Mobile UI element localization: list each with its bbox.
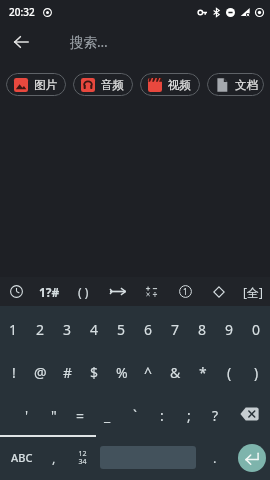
staticText: _ (104, 406, 111, 425)
button[interactable]: , (44, 435, 64, 480)
button[interactable]: 文档 (207, 73, 264, 96)
staticText: ^ (144, 363, 153, 382)
staticText: 1 (9, 320, 18, 339)
button[interactable]: ^ (135, 349, 162, 392)
button[interactable]: Numbers (168, 277, 202, 306)
staticText: ) (254, 363, 259, 382)
staticText: 图片 (34, 78, 57, 92)
staticText: ; (187, 406, 191, 425)
staticText: 0 (252, 320, 261, 339)
button[interactable]: % (108, 349, 135, 392)
button[interactable]: $ (81, 349, 108, 392)
staticText: 1?# (39, 284, 60, 300)
staticText: 5 (117, 320, 126, 339)
staticText: 7 (171, 320, 180, 339)
staticText: ABC (11, 450, 33, 465)
staticText: 视频 (168, 78, 191, 92)
staticText: 8 (198, 320, 207, 339)
button[interactable]: 音频 (73, 73, 133, 96)
button[interactable]: Recent (0, 277, 33, 306)
staticText: & (170, 363, 181, 382)
button[interactable]: Math (134, 277, 168, 306)
staticText: [全] (243, 284, 263, 300)
staticText: 6 (144, 320, 153, 339)
button[interactable]: 1 (0, 306, 27, 349)
button[interactable]: * (189, 349, 216, 392)
button[interactable]: ) (243, 349, 270, 392)
button[interactable]: 0 (243, 306, 270, 349)
button[interactable]: 3 (54, 306, 81, 349)
button[interactable]: 6 (135, 306, 162, 349)
staticText: ` (133, 406, 137, 425)
staticText: ' (25, 406, 29, 425)
button[interactable]: 2 (27, 306, 54, 349)
button[interactable]: @ (27, 349, 54, 392)
staticText: 12 34 (78, 449, 87, 466)
button[interactable]: ABC (0, 435, 44, 480)
button[interactable]: . (196, 435, 234, 480)
staticText: 9 (225, 320, 234, 339)
button[interactable]: 12 34 (64, 435, 100, 480)
staticText: = (76, 406, 85, 425)
button[interactable]: ! (0, 349, 27, 392)
button[interactable]: : (148, 392, 175, 435)
staticText: % (116, 363, 128, 382)
staticText: * (199, 363, 207, 382)
button[interactable]: Backspace (229, 392, 270, 435)
button[interactable]: _ (94, 392, 121, 435)
staticText: $ (90, 363, 99, 382)
button[interactable]: 4 (81, 306, 108, 349)
staticText: ! (12, 363, 16, 382)
button[interactable]: 5 (108, 306, 135, 349)
staticText: ( (227, 363, 232, 382)
button[interactable]: 8 (189, 306, 216, 349)
staticText: : (160, 406, 164, 425)
button[interactable]: Enter (238, 444, 266, 472)
staticText: . (213, 449, 217, 467)
button[interactable]: ' (13, 392, 40, 435)
staticText: ? (212, 406, 219, 425)
staticText: 2 (36, 320, 45, 339)
staticText: 搜索… (70, 33, 108, 51)
staticText: , (52, 449, 56, 467)
button[interactable]: Brackets (66, 277, 100, 306)
staticText: 1 (183, 286, 188, 297)
staticText: 20:32 (9, 5, 35, 19)
button[interactable]: ` (121, 392, 148, 435)
button[interactable]: Arrows (100, 277, 134, 306)
button[interactable]: 7 (162, 306, 189, 349)
button[interactable]: ? (202, 392, 229, 435)
button[interactable]: = (67, 392, 94, 435)
staticText: 4 (90, 320, 99, 339)
button[interactable]: " (40, 392, 67, 435)
button[interactable]: Back (5, 26, 37, 58)
button[interactable]: Full width (236, 277, 270, 306)
button[interactable]: ; (175, 392, 202, 435)
button[interactable]: Symbols (33, 277, 66, 306)
button[interactable]: # (54, 349, 81, 392)
button[interactable]: ( (216, 349, 243, 392)
staticText: ( ) (78, 284, 89, 300)
button[interactable]: Shapes (202, 277, 236, 306)
staticText: 音频 (101, 78, 124, 92)
staticText: # (63, 363, 73, 382)
staticText: 文档 (235, 78, 258, 92)
staticText: @ (34, 363, 47, 382)
staticText: 3 (63, 320, 72, 339)
button[interactable]: 9 (216, 306, 243, 349)
staticText: " (51, 406, 57, 425)
button[interactable]: 图片 (6, 73, 66, 96)
button[interactable]: 视频 (140, 73, 200, 96)
button[interactable]: & (162, 349, 189, 392)
